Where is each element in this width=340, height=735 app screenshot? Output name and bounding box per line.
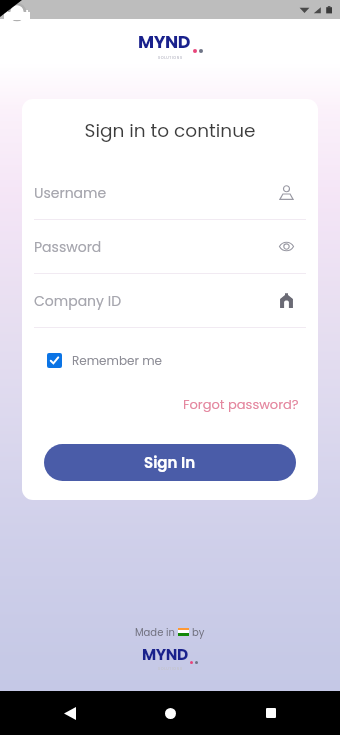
staticText: MYND (142, 644, 188, 666)
staticText: Username (34, 183, 279, 203)
button[interactable]: Home (139, 691, 201, 735)
button[interactable]: Username (22, 166, 318, 220)
button[interactable]: Back (0, 691, 139, 735)
staticText: Company ID (34, 291, 279, 311)
staticText: by (192, 625, 205, 639)
staticText: Made in (135, 625, 175, 639)
staticText: SOLUTIONS (158, 666, 183, 671)
staticText: Password (34, 237, 279, 257)
staticText: MYND (138, 30, 191, 55)
button[interactable]: Recent apps (201, 691, 340, 735)
button[interactable]: Company ID (22, 274, 318, 328)
staticText: Sign in to continue (22, 118, 318, 144)
button[interactable]: Remember me (47, 352, 162, 369)
staticText: Remember me (72, 352, 162, 369)
button[interactable]: Sign In (44, 444, 296, 481)
staticText: SOLUTIONS (158, 55, 183, 60)
button[interactable]: Password (22, 220, 318, 274)
staticText: Sign In (144, 452, 196, 473)
button[interactable]: Forgot password? (164, 391, 318, 417)
